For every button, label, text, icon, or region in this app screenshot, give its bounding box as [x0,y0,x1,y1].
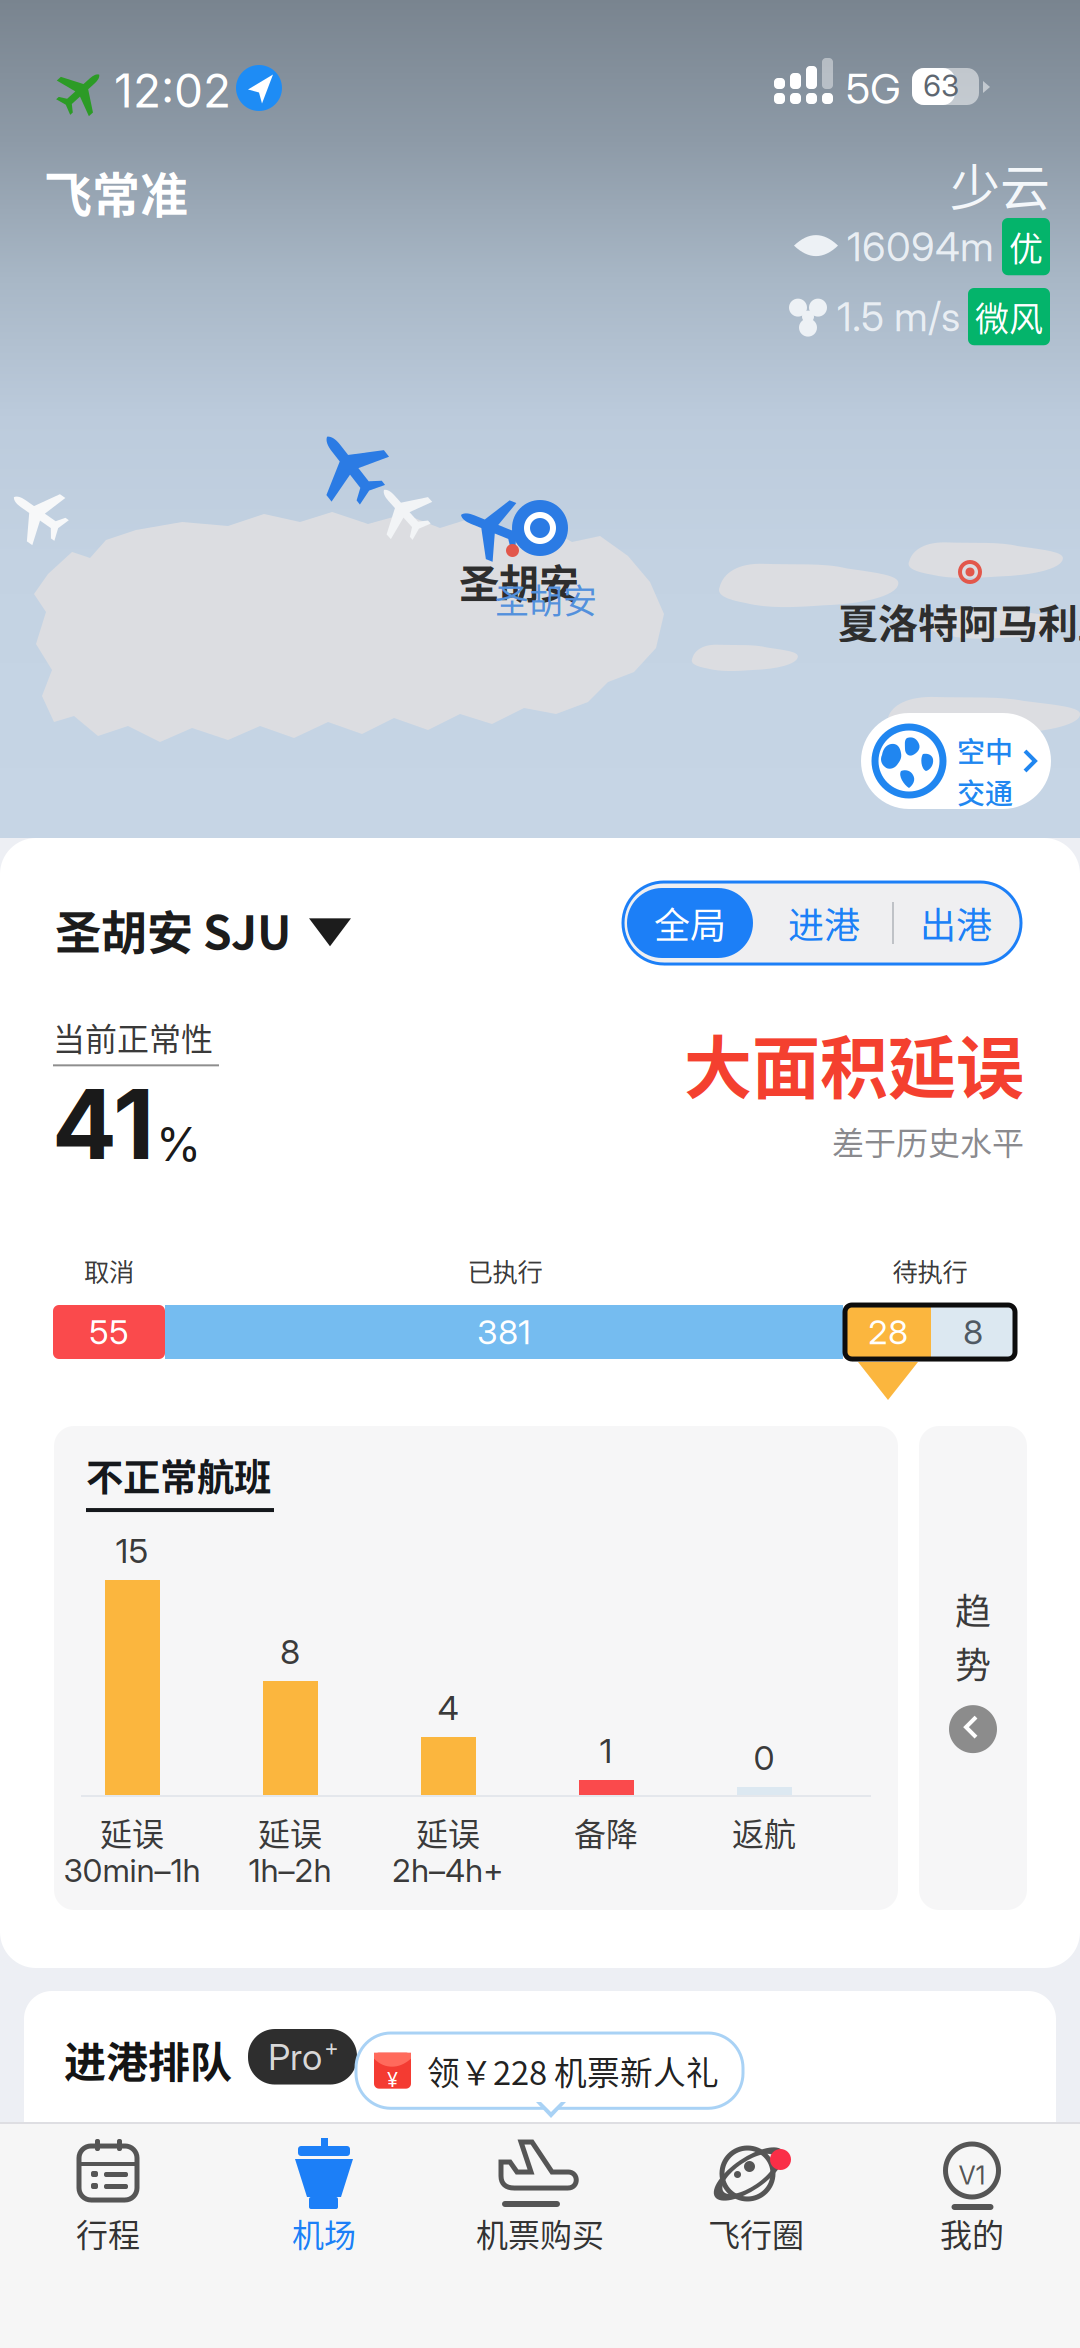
staticText: 41 [52,1066,154,1182]
staticText: 不正常航班 [86,1448,271,1502]
staticText: 备降 [574,1809,638,1855]
staticText: 趋 [955,1583,991,1635]
staticText: 15 [115,1530,148,1571]
staticText: 出港 [920,897,992,949]
staticText: 8 [963,1311,983,1352]
staticText: 12:02 [114,63,231,119]
staticText: 延误 [100,1809,164,1855]
staticText: 5G [846,63,901,114]
button[interactable]: 空中 [861,713,1051,809]
button[interactable]: 出港 [893,888,1019,958]
staticText: 飞行圈 [708,2210,804,2256]
staticText: 381 [477,1311,531,1352]
button[interactable]: 进港 [756,888,892,958]
staticText: 空中 [957,730,1013,770]
button[interactable]: 机场 [216,2138,432,2288]
staticText: 微风 [975,292,1043,341]
staticText: 延误 [258,1809,322,1855]
staticText: 8 [280,1631,300,1672]
staticText: 领￥228 机票新人礼 [427,2047,719,2094]
staticText: 已执行 [467,1252,542,1289]
staticText: 夏洛特阿马利亚 [838,592,1080,650]
staticText: + [324,2034,339,2061]
staticText: 4 [437,1687,458,1728]
staticText: 优 [1009,222,1043,271]
staticText: 少云 [950,148,1050,220]
staticText: 机票购买 [476,2210,604,2256]
staticText: 进港排队 [64,2029,232,2090]
button[interactable]: 机票购买 [432,2138,648,2288]
staticText: 我的 [940,2210,1004,2256]
staticText: 大面积延误 [684,1014,1024,1112]
staticText: 1 [599,1730,612,1771]
button[interactable]: 行程 [0,2138,216,2288]
staticText: 30min–1h [63,1851,200,1890]
staticText: Pro [268,2035,322,2079]
button[interactable]: 圣胡安 SJU [55,896,351,963]
staticText: 差于历史水平 [832,1118,1024,1164]
staticText: 取消 [84,1252,134,1289]
staticText: 机场 [292,2210,356,2256]
staticText: 交通 [957,771,1013,812]
staticText: 圣胡安 [459,552,579,610]
staticText: 返航 [732,1809,796,1855]
staticText: 2h–4h+ [392,1851,504,1890]
staticText: ¥ [387,2068,398,2092]
staticText: 待执行 [892,1252,967,1289]
staticText: V1 [958,2160,985,2191]
button[interactable]: V1 [864,2138,1080,2288]
staticText: % [156,1116,201,1172]
staticText: 全局 [654,897,726,949]
staticText: 飞常准 [44,157,188,226]
button[interactable]: 飞行圈 [648,2138,864,2288]
staticText: 圣胡安 SJU [55,896,291,963]
staticText: 进港 [788,897,860,949]
staticText: 势 [955,1637,991,1689]
staticText: 行程 [76,2210,140,2256]
staticText: 16094m [847,222,994,271]
staticText: 圣胡安 [495,574,597,623]
button[interactable]: ¥ [356,2033,743,2108]
staticText: 28 [868,1311,908,1352]
staticText: 延误 [416,1809,480,1855]
staticText: 55 [89,1311,129,1352]
staticText: 1.5 m/s [837,292,960,341]
staticText: 63 [923,67,959,104]
staticText: 0 [753,1737,774,1778]
button[interactable]: 趋 [919,1426,1027,1910]
staticText: 当前正常性 [53,1014,213,1060]
staticText: 1h–2h [248,1851,331,1890]
button[interactable]: 全局 [627,888,753,958]
